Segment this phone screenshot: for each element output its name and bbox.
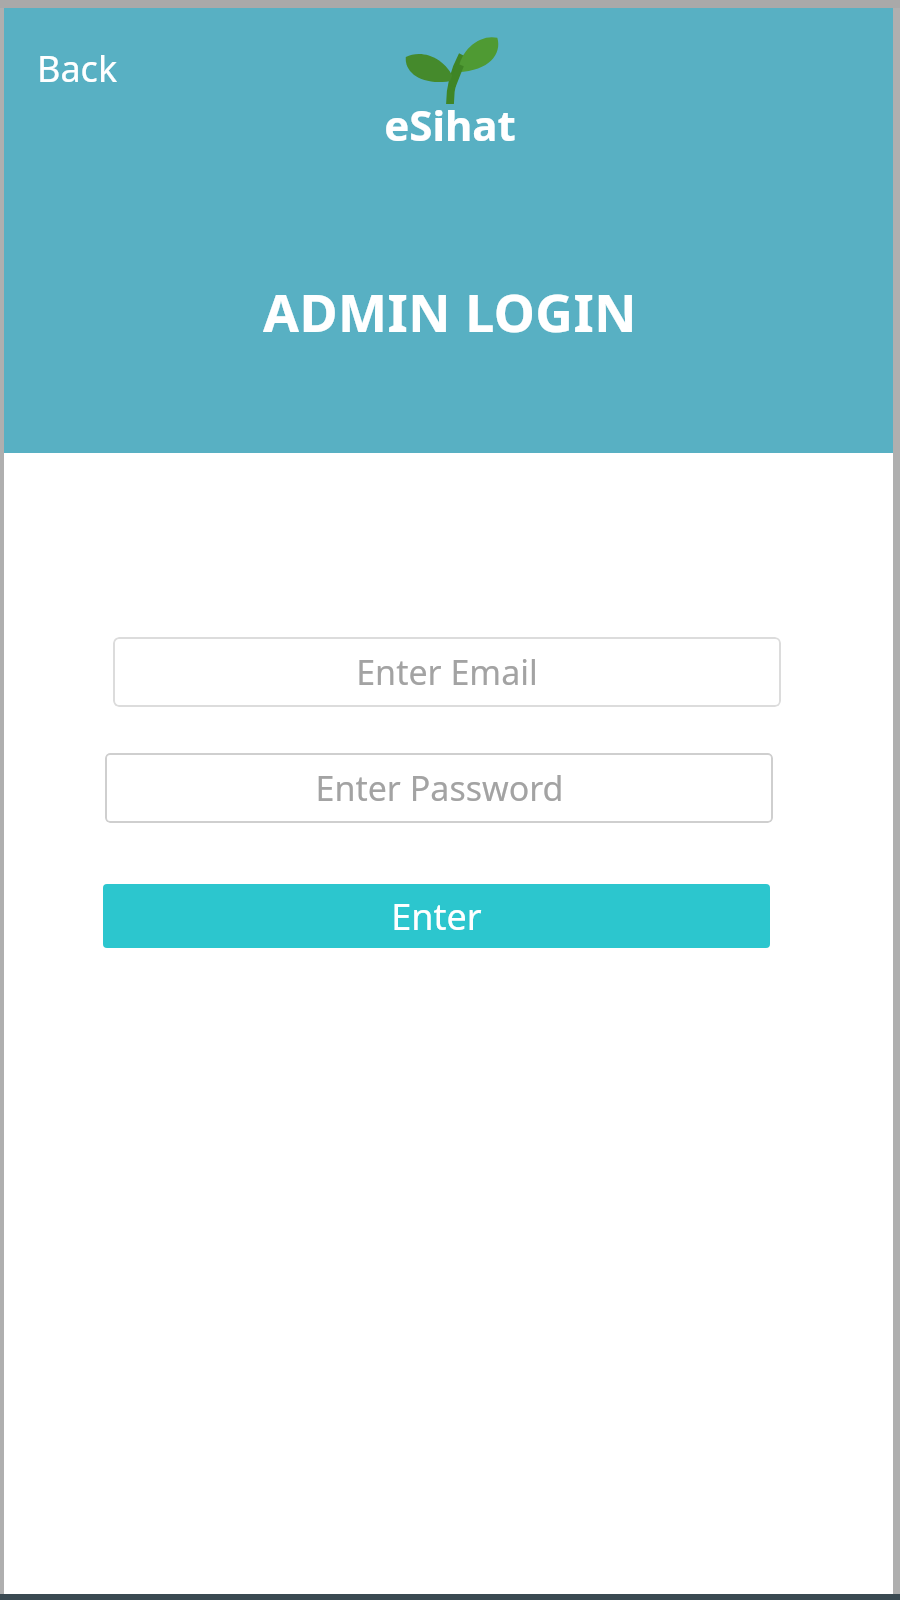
staticText: ADMIN LOGIN — [263, 276, 637, 336]
staticText: eSihat — [384, 96, 516, 144]
staticText: Back — [37, 44, 118, 93]
button[interactable]: Enter Email — [113, 637, 781, 707]
button[interactable]: Enter Password — [105, 753, 773, 823]
staticText: Enter Password — [315, 765, 564, 811]
button[interactable]: Back — [24, 40, 132, 96]
button[interactable]: Enter — [103, 884, 770, 948]
other: eSihat logo — [398, 34, 502, 104]
staticText: Enter — [391, 892, 482, 941]
staticText: Enter Email — [356, 649, 538, 695]
